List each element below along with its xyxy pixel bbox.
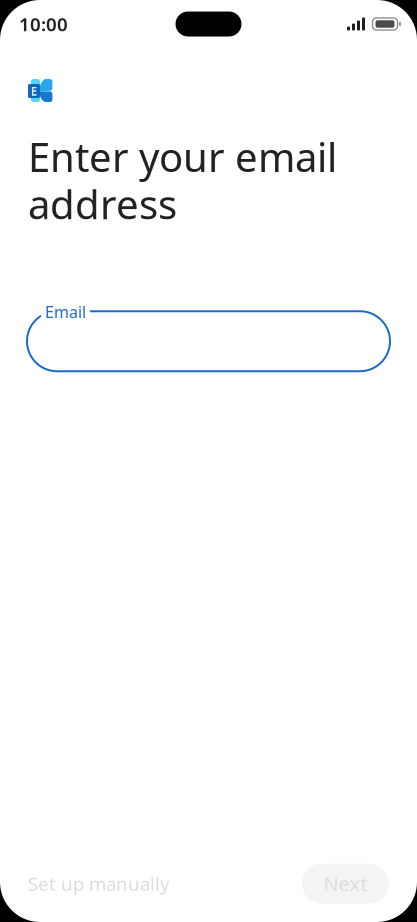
button[interactable]: Set up manually bbox=[0, 859, 186, 908]
button[interactable]: Next bbox=[302, 864, 389, 904]
staticText: Set up manually bbox=[28, 871, 170, 896]
staticText: E bbox=[30, 83, 37, 99]
staticText: Enter your email address bbox=[28, 130, 337, 230]
staticText: 10:00 bbox=[19, 12, 68, 36]
staticText: Email bbox=[45, 301, 86, 322]
staticText: Next bbox=[323, 870, 367, 897]
